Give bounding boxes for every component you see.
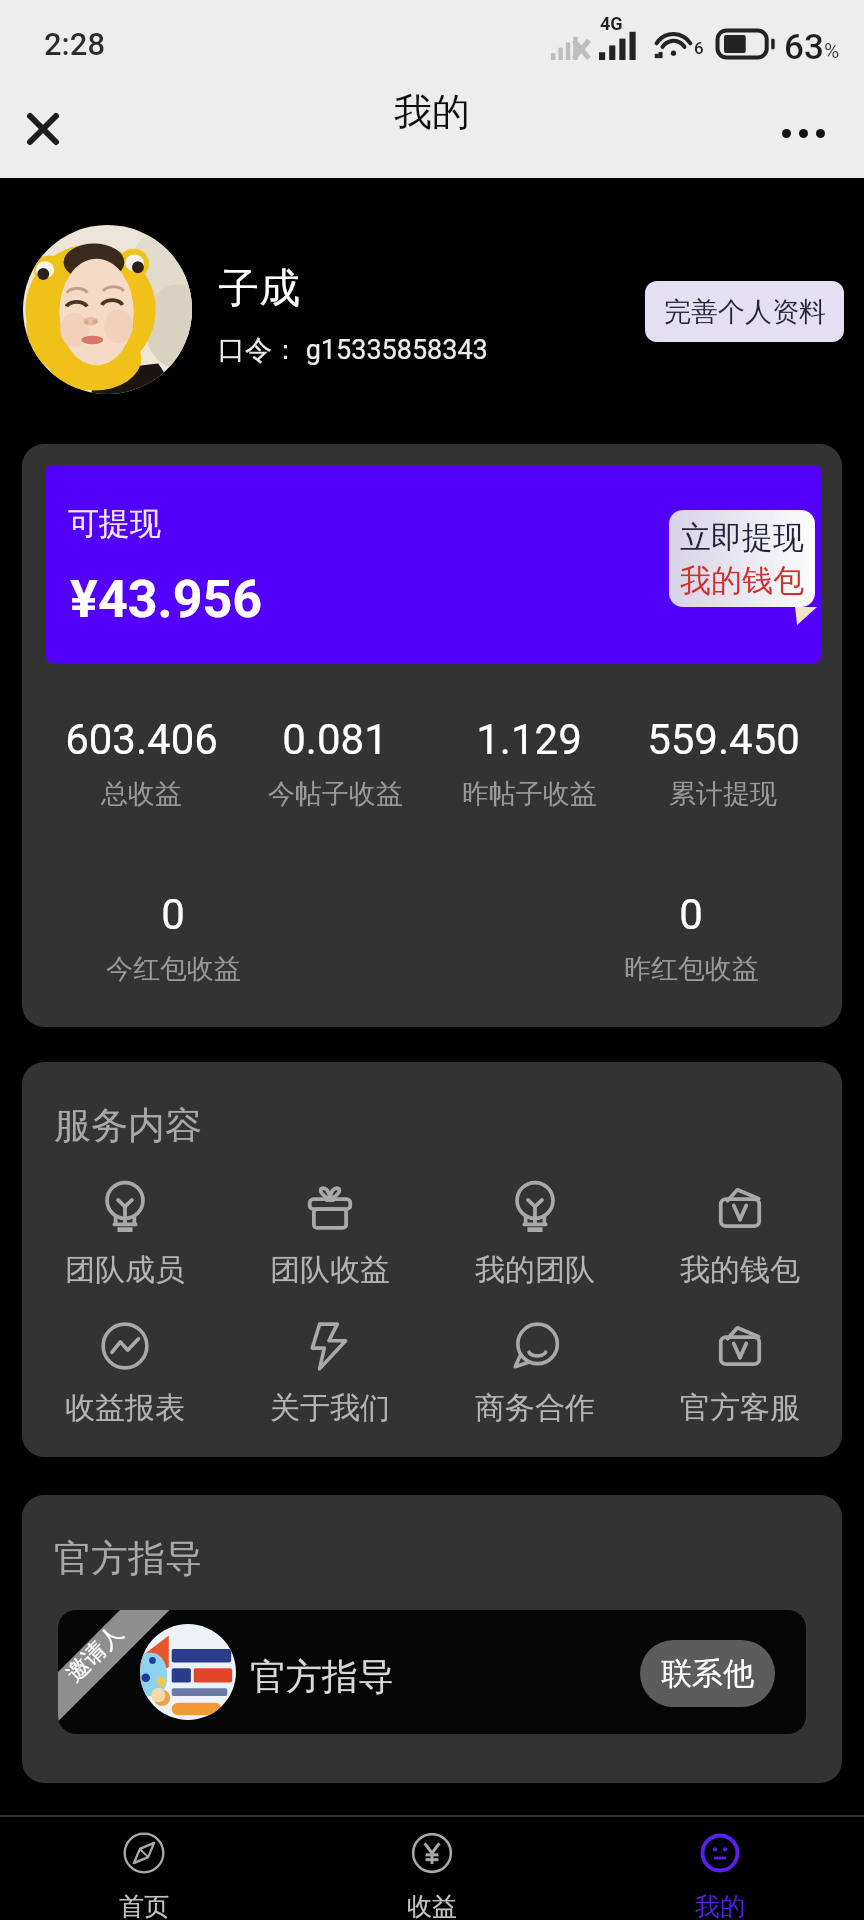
staticText: 我的团队 — [475, 1251, 595, 1289]
staticText: 63 — [784, 27, 824, 68]
staticText: 我的 — [695, 1891, 745, 1920]
staticText: 口令： g15335858343 — [218, 333, 488, 367]
button[interactable]: 商务合作 — [432, 1320, 637, 1427]
staticText: 1.129 — [476, 715, 582, 764]
button[interactable]: 我的 — [576, 1817, 864, 1920]
staticText: 总收益 — [101, 777, 182, 811]
staticText: 官方客服 — [680, 1389, 800, 1427]
button[interactable]: 我的钱包 — [637, 1182, 842, 1289]
staticText: 官方指导 — [54, 1535, 202, 1582]
staticText: 官方指导 — [250, 1654, 394, 1699]
button[interactable]: 0 — [83, 890, 263, 986]
button[interactable]: 0.081 — [238, 715, 432, 811]
staticText: 0 — [679, 890, 703, 939]
staticText: 收益 — [407, 1891, 457, 1920]
button[interactable]: 首页 — [0, 1817, 288, 1920]
button[interactable]: More options — [744, 88, 864, 178]
button[interactable]: 收益报表 — [22, 1320, 227, 1427]
button[interactable]: Close — [3, 84, 83, 174]
button[interactable]: 官方客服 — [637, 1320, 842, 1427]
staticText: 2:28 — [44, 26, 106, 62]
staticText: 完善个人资料 — [664, 295, 826, 329]
staticText: ¥43.956 — [70, 569, 263, 630]
staticText: 累计提现 — [669, 777, 777, 811]
button[interactable]: 立即提现 — [669, 510, 815, 607]
button[interactable]: 联系他 — [640, 1640, 775, 1707]
staticText: 首页 — [119, 1891, 169, 1920]
staticText: 559.450 — [647, 715, 800, 764]
button[interactable]: 可提现 — [45, 465, 822, 663]
staticText: 我的钱包 — [680, 1251, 800, 1289]
staticText: 我的 — [394, 88, 470, 136]
button[interactable]: 1.129 — [432, 715, 626, 811]
staticText: 商务合作 — [475, 1389, 595, 1427]
staticText: 今红包收益 — [106, 952, 241, 986]
button[interactable]: 0 — [601, 890, 781, 986]
staticText: 可提现 — [68, 504, 161, 543]
staticText: 子成 — [218, 263, 300, 315]
staticText: 联系他 — [661, 1654, 754, 1693]
button[interactable]: 559.450 — [626, 715, 820, 811]
staticText: 0 — [161, 890, 185, 939]
button[interactable]: 603.406 — [44, 715, 238, 811]
staticText: 昨帖子收益 — [462, 777, 597, 811]
staticText: % — [824, 39, 840, 64]
button[interactable]: 团队收益 — [227, 1182, 432, 1289]
staticText: 4G — [600, 13, 623, 34]
staticText: 收益报表 — [65, 1389, 185, 1427]
staticText: 关于我们 — [270, 1389, 390, 1427]
button[interactable]: 完善个人资料 — [645, 281, 844, 342]
button[interactable]: 关于我们 — [227, 1320, 432, 1427]
staticText: 昨红包收益 — [624, 952, 759, 986]
staticText: 今帖子收益 — [268, 777, 403, 811]
staticText: 我的钱包 — [680, 561, 804, 600]
staticText: 团队收益 — [270, 1251, 390, 1289]
staticText: 邀请人 — [60, 1619, 129, 1688]
staticText: 服务内容 — [54, 1102, 202, 1149]
button[interactable]: 团队成员 — [22, 1182, 227, 1289]
button[interactable]: 邀请人 — [58, 1610, 806, 1734]
staticText: 团队成员 — [65, 1251, 185, 1289]
staticText: 603.406 — [65, 715, 218, 764]
staticText: 0.081 — [282, 715, 388, 764]
staticText: 6 — [694, 38, 704, 58]
staticText: 立即提现 — [680, 518, 804, 557]
button[interactable]: 我的团队 — [432, 1182, 637, 1289]
button[interactable]: 收益 — [288, 1817, 576, 1920]
